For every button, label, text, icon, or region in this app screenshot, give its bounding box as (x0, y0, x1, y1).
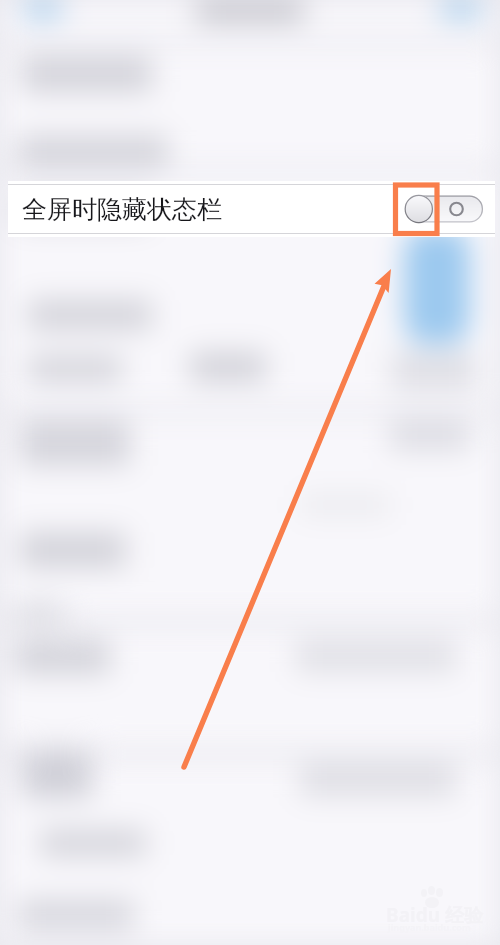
other: Highlight (390, 179, 444, 241)
staticText: 全屏时隐藏状态栏 (22, 194, 222, 225)
button[interactable]: 全屏时隐藏状态栏 (8, 181, 495, 237)
